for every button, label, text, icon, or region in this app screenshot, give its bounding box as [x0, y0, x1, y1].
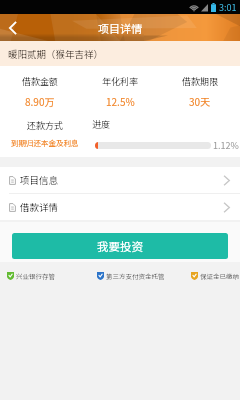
staticText: 我要投资: [97, 238, 143, 255]
staticText: 兴业银行存管: [16, 271, 55, 280]
staticText: 8.90万: [25, 94, 55, 108]
button[interactable]: 项目信息: [0, 167, 240, 193]
staticText: 12.5%: [106, 94, 135, 108]
staticText: 1.12%: [213, 139, 239, 152]
staticText: 30天: [189, 94, 211, 108]
staticText: 借款期限: [182, 75, 219, 88]
staticText: 项目详情: [98, 20, 142, 36]
staticText: 进度: [92, 118, 111, 131]
button[interactable]: 借款详情: [0, 194, 240, 220]
staticText: 3:01: [219, 1, 237, 14]
staticText: 保证金已缴纳: [200, 271, 239, 280]
button[interactable]: Back: [0, 14, 26, 41]
staticText: 借款金额: [22, 75, 59, 88]
button[interactable]: 我要投资: [12, 233, 228, 259]
staticText: 还款方式: [27, 119, 64, 132]
staticText: 到期归还本金及利息: [11, 137, 79, 148]
staticText: 项目信息: [20, 173, 59, 187]
staticText: 第三方支付资金托管: [106, 271, 165, 280]
staticText: 年化利率: [102, 75, 139, 88]
staticText: 暖阳贰期（猴年吉祥）: [8, 47, 104, 61]
staticText: 借款详情: [20, 200, 59, 214]
